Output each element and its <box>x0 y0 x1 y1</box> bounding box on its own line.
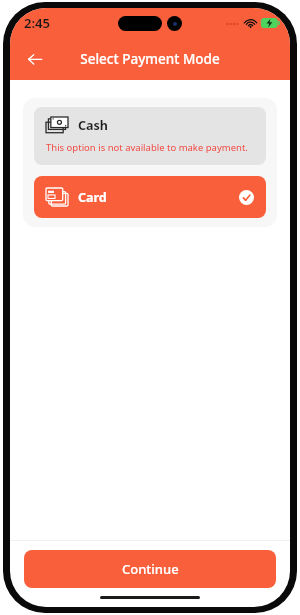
staticText: Continue <box>122 560 179 578</box>
staticText: Cash <box>78 117 108 134</box>
staticText: 2:45 <box>24 14 50 32</box>
button[interactable]: Card <box>34 176 266 218</box>
button[interactable]: Continue <box>24 550 276 588</box>
staticText: This option is not available to make pay… <box>46 141 248 154</box>
button[interactable]: Cash <box>34 107 266 165</box>
staticText: Card <box>78 189 107 206</box>
staticText: Select Payment Mode <box>80 50 220 68</box>
button[interactable]: Back <box>18 42 52 76</box>
